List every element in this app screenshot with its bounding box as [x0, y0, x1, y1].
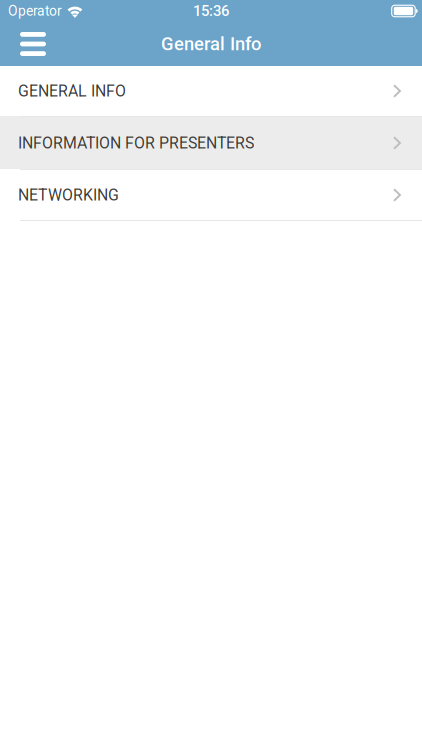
button[interactable]: GENERAL INFO: [0, 66, 422, 116]
staticText: NETWORKING: [18, 186, 119, 204]
button[interactable]: NETWORKING: [0, 170, 422, 220]
staticText: INFORMATION FOR PRESENTERS: [18, 134, 254, 152]
staticText: Operator: [8, 3, 62, 19]
button[interactable]: Menu: [0, 22, 58, 66]
button[interactable]: INFORMATION FOR PRESENTERS: [0, 117, 422, 169]
staticText: 15:36: [193, 2, 229, 20]
staticText: General Info: [161, 33, 261, 55]
staticText: GENERAL INFO: [18, 82, 126, 100]
